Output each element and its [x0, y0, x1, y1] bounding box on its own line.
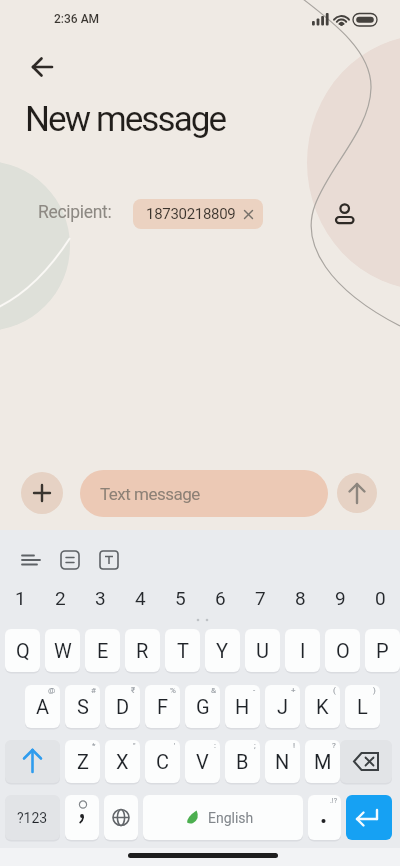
staticText: J [277, 695, 289, 718]
button[interactable] [21, 472, 63, 514]
button[interactable]: I [285, 629, 320, 672]
button[interactable]: H [225, 685, 260, 728]
button[interactable]: L [345, 685, 380, 728]
staticText: 6 [215, 587, 226, 609]
staticText: C [156, 750, 170, 773]
button[interactable]: ?123 [5, 795, 60, 840]
button[interactable]: P [365, 629, 400, 672]
staticText: Recipient: [38, 202, 112, 223]
button[interactable]: J [265, 685, 300, 728]
staticText: # [91, 686, 96, 695]
button[interactable]: X [105, 740, 140, 783]
staticText: 9 [335, 587, 346, 609]
button[interactable]: R [125, 629, 160, 672]
button[interactable]: 7 [240, 586, 280, 610]
staticText: W [54, 639, 72, 662]
staticText: ?123 [17, 810, 48, 826]
staticText: English [208, 810, 254, 826]
button[interactable]: 5 [160, 586, 200, 610]
staticText: Z [77, 750, 89, 773]
button[interactable]: M [305, 740, 340, 783]
staticText: * [92, 741, 96, 750]
staticText: 7 [255, 587, 266, 609]
button[interactable]: Y [205, 629, 240, 672]
button[interactable]: K [305, 685, 340, 728]
button[interactable]: 1 [0, 586, 40, 610]
button[interactable]: Text message [80, 470, 328, 517]
staticText: 8 [295, 587, 306, 609]
button[interactable]: G [185, 685, 220, 728]
staticText: U [256, 639, 269, 662]
staticText: Q [16, 639, 30, 662]
staticText: + [291, 686, 296, 695]
button[interactable]: O [325, 629, 360, 672]
button[interactable]: Q [5, 629, 40, 672]
button[interactable] [20, 54, 64, 82]
button[interactable] [337, 473, 377, 513]
staticText: M [314, 750, 332, 773]
button[interactable]: 3 [80, 586, 120, 610]
button[interactable]: T [165, 629, 200, 672]
button[interactable]: S [65, 685, 100, 728]
button[interactable]: Z [65, 740, 100, 783]
button[interactable]: 8 [280, 586, 320, 610]
staticText: X [116, 750, 129, 773]
staticText: 2 [55, 587, 66, 609]
staticText: 18730218809 [146, 205, 236, 223]
staticText: G [196, 695, 210, 718]
button[interactable]: 6 [200, 586, 240, 610]
button[interactable]: U [245, 629, 280, 672]
staticText: ₹ [131, 686, 136, 695]
staticText: 4 [135, 587, 146, 609]
staticText: I [300, 639, 306, 662]
staticText: S [77, 695, 89, 718]
staticText: L [357, 695, 368, 718]
staticText: 0 [375, 587, 386, 609]
button[interactable]: .!? [308, 795, 341, 840]
staticText: F [157, 695, 169, 718]
staticText: ' [174, 741, 176, 750]
button[interactable]: C [145, 740, 180, 783]
staticText: : [214, 741, 216, 750]
button[interactable]: E [85, 629, 120, 672]
staticText: & [211, 686, 216, 695]
button[interactable] [5, 740, 60, 783]
staticText: .!? [330, 797, 337, 805]
staticText: D [116, 695, 130, 718]
staticText: ) [373, 686, 376, 695]
staticText: Text message [100, 484, 200, 504]
staticText: % [170, 686, 176, 695]
button[interactable]: 0 [360, 586, 400, 610]
button[interactable] [327, 196, 363, 232]
button[interactable]: 4 [120, 586, 160, 610]
staticText: New message [25, 99, 226, 140]
button[interactable]: English [143, 795, 303, 840]
staticText: T [177, 639, 189, 662]
staticText: 3 [95, 587, 106, 609]
button[interactable]: D [105, 685, 140, 728]
staticText: B [236, 750, 249, 773]
staticText: 1 [15, 587, 26, 609]
button[interactable]: 9 [320, 586, 360, 610]
staticText: " [133, 741, 136, 750]
button[interactable] [340, 740, 392, 783]
button[interactable] [346, 795, 392, 840]
button[interactable] [65, 795, 99, 840]
staticText: O [336, 639, 350, 662]
staticText: ? [332, 741, 336, 750]
staticText: R [136, 639, 149, 662]
staticText: 2:36 AM [54, 12, 100, 26]
button[interactable]: A [25, 685, 60, 728]
staticText: ( [333, 686, 336, 695]
button[interactable]: V [185, 740, 220, 783]
button[interactable]: B [225, 740, 260, 783]
staticText: P [376, 639, 389, 662]
staticText: K [316, 695, 329, 718]
button[interactable] [104, 795, 138, 840]
button[interactable]: F [145, 685, 180, 728]
staticText: V [196, 750, 209, 773]
button[interactable]: W [45, 629, 80, 672]
button[interactable]: 2 [40, 586, 80, 610]
button[interactable]: N [265, 740, 300, 783]
button[interactable]: 18730218809 [133, 199, 263, 229]
